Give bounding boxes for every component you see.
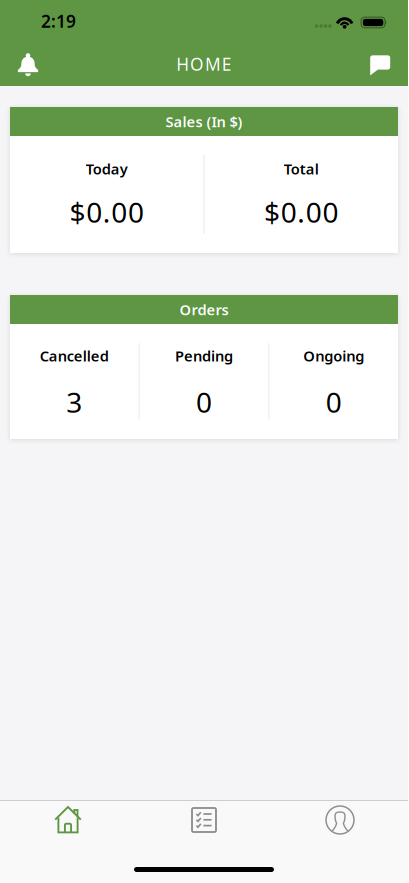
staticText: 0 — [326, 383, 342, 420]
staticText: 0 — [196, 383, 212, 420]
staticText: Sales (In $) — [165, 112, 242, 131]
button[interactable]: Orders — [136, 807, 272, 833]
button[interactable]: Profile — [272, 806, 408, 834]
staticText: 2:19 — [41, 9, 76, 32]
staticText: Cancelled — [40, 346, 109, 365]
staticText: Orders — [179, 300, 228, 319]
button[interactable]: Home — [0, 805, 136, 835]
staticText: 3 — [66, 383, 82, 420]
staticText: $0.00 — [264, 193, 338, 230]
button[interactable]: Notifications — [0, 51, 40, 77]
staticText: $0.00 — [70, 193, 144, 230]
staticText: HOME — [176, 52, 232, 75]
staticText: Total — [284, 159, 319, 178]
button[interactable]: Messages — [368, 51, 408, 77]
staticText: Today — [86, 159, 128, 178]
staticText: Pending — [175, 346, 233, 365]
staticText: Ongoing — [303, 346, 364, 365]
